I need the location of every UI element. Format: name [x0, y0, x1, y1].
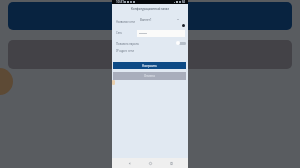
staticText: Ваннет1 [140, 18, 152, 22]
staticText: 84 [182, 0, 185, 4]
button[interactable] [8, 40, 292, 69]
button[interactable]: Recents [167, 159, 175, 167]
button[interactable]: Back [125, 159, 133, 167]
button[interactable]: Show password [181, 23, 186, 28]
button[interactable]: Show password [176, 41, 186, 45]
staticText: Настроить [142, 64, 157, 68]
staticText: •••••••• [139, 32, 147, 36]
staticText: Название сети [116, 20, 135, 24]
button[interactable]: Отмена [113, 72, 186, 80]
staticText: 10:31 [116, 0, 125, 4]
staticText: Показать пароль [116, 42, 139, 46]
staticText: Сеть [116, 31, 123, 35]
button[interactable] [8, 2, 292, 30]
staticText: Отмена [144, 74, 155, 78]
button[interactable]: Home [146, 159, 154, 167]
staticText: IP адрес сети [116, 49, 134, 53]
button[interactable]: Настроить [113, 62, 186, 69]
button[interactable]: •••••••• [137, 30, 185, 37]
staticText: Конфигурационный заказ [131, 7, 169, 11]
